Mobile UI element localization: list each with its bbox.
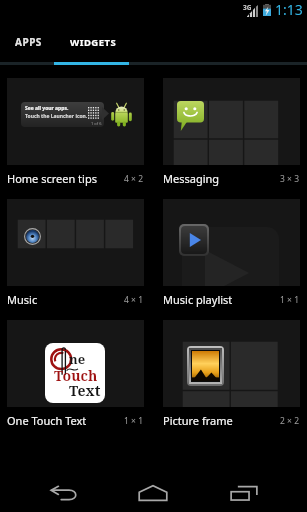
staticText: Picture frame: [163, 413, 233, 428]
staticText: Home screen tips: [7, 171, 97, 186]
staticText: 1:13: [275, 0, 303, 18]
staticText: 4 × 2: [124, 173, 144, 185]
staticText: Music playlist: [163, 292, 233, 307]
staticText: Touch the Launcher icon.: [25, 113, 88, 120]
staticText: 2 × 2: [280, 415, 300, 427]
staticText: Messaging: [163, 171, 220, 186]
button[interactable]: Music playlist: [163, 199, 300, 320]
staticText: 1 of 6: [91, 121, 102, 126]
button[interactable]: Recent apps: [210, 460, 278, 512]
button[interactable]: ne: [7, 320, 144, 441]
staticText: 1 × 1: [124, 415, 144, 427]
button[interactable]: See all your apps.: [7, 78, 144, 199]
button[interactable]: Picture frame: [163, 320, 300, 441]
staticText: APPS: [15, 35, 42, 49]
button[interactable]: Messaging: [163, 78, 300, 199]
button[interactable]: Music: [7, 199, 144, 320]
staticText: 4 × 1: [124, 294, 144, 306]
staticText: Music: [7, 292, 38, 307]
staticText: Touch: [54, 366, 98, 385]
button[interactable]: Back: [30, 460, 98, 512]
staticText: 1 × 1: [280, 294, 300, 306]
staticText: 3 × 3: [280, 173, 300, 185]
staticText: WIDGETS: [70, 36, 117, 49]
button[interactable]: APPS: [0, 18, 54, 62]
staticText: Text: [69, 381, 101, 400]
staticText: See all your apps.: [25, 105, 69, 112]
staticText: ne: [69, 350, 86, 368]
staticText: One Touch Text: [7, 413, 87, 428]
button[interactable]: WIDGETS: [54, 18, 129, 62]
button[interactable]: Home: [119, 460, 187, 512]
staticText: 3G: [243, 3, 252, 12]
